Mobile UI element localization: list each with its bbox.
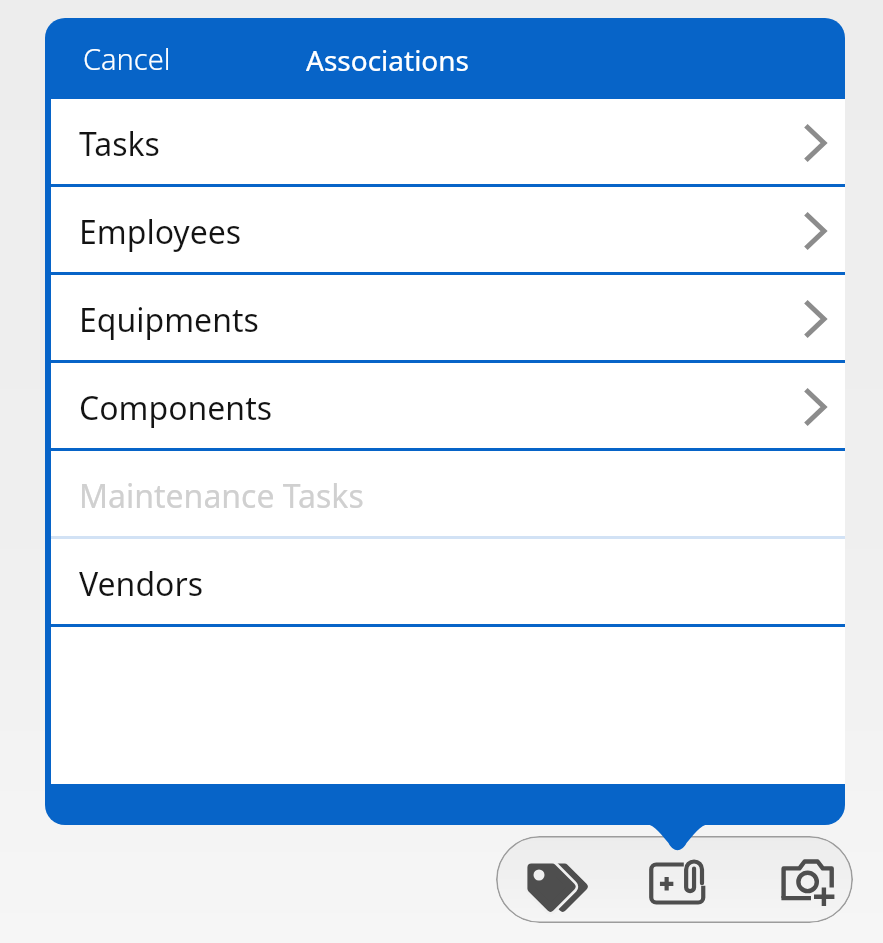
button[interactable]: Tags <box>496 836 615 923</box>
button[interactable]: Employees <box>51 187 845 272</box>
staticText: Cancel <box>83 39 171 78</box>
staticText: Maintenance Tasks <box>79 474 364 518</box>
staticText: Tasks <box>79 122 160 166</box>
staticText: Equipments <box>79 298 259 342</box>
staticText: Vendors <box>79 562 203 606</box>
button[interactable]: Maintenance Tasks <box>51 451 845 536</box>
button[interactable]: Take photo <box>734 836 853 923</box>
button[interactable]: Tasks <box>51 99 845 184</box>
button[interactable]: Cancel <box>45 29 191 88</box>
staticText: Components <box>79 386 273 430</box>
button[interactable]: Equipments <box>51 275 845 360</box>
staticText: Associations <box>306 41 470 79</box>
button[interactable]: Vendors <box>51 539 845 624</box>
button[interactable]: Components <box>51 363 845 448</box>
staticText: Employees <box>79 210 242 254</box>
button[interactable]: Add attachment <box>615 836 734 923</box>
